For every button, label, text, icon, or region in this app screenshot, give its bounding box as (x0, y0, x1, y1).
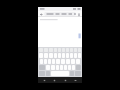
button[interactable] (56, 59, 60, 64)
button[interactable] (60, 65, 63, 70)
button[interactable] (52, 59, 55, 64)
button[interactable] (62, 53, 65, 58)
button[interactable] (74, 53, 77, 58)
button[interactable] (39, 53, 43, 58)
button[interactable] (70, 53, 73, 58)
button[interactable] (44, 12, 76, 16)
button[interactable] (44, 59, 47, 64)
button[interactable] (66, 59, 70, 64)
button[interactable]: Menu (72, 77, 79, 83)
button[interactable] (58, 53, 61, 58)
button[interactable] (49, 53, 53, 58)
button[interactable] (44, 53, 48, 58)
button[interactable] (46, 65, 50, 70)
button[interactable] (54, 53, 57, 58)
button[interactable] (61, 59, 65, 64)
button[interactable] (48, 59, 51, 64)
button[interactable]: Back (39, 12, 44, 17)
button[interactable] (68, 65, 71, 70)
button[interactable] (51, 65, 55, 70)
button[interactable] (56, 65, 59, 70)
button[interactable] (66, 53, 69, 58)
button[interactable]: Home (51, 77, 58, 83)
button[interactable]: More options (76, 12, 81, 17)
button[interactable] (71, 59, 75, 64)
button[interactable]: Recents (62, 77, 69, 83)
button[interactable] (40, 59, 43, 64)
button[interactable] (64, 65, 67, 70)
button[interactable] (78, 53, 81, 58)
button[interactable]: Back (41, 77, 48, 83)
button[interactable] (76, 59, 80, 64)
button[interactable] (72, 65, 75, 70)
